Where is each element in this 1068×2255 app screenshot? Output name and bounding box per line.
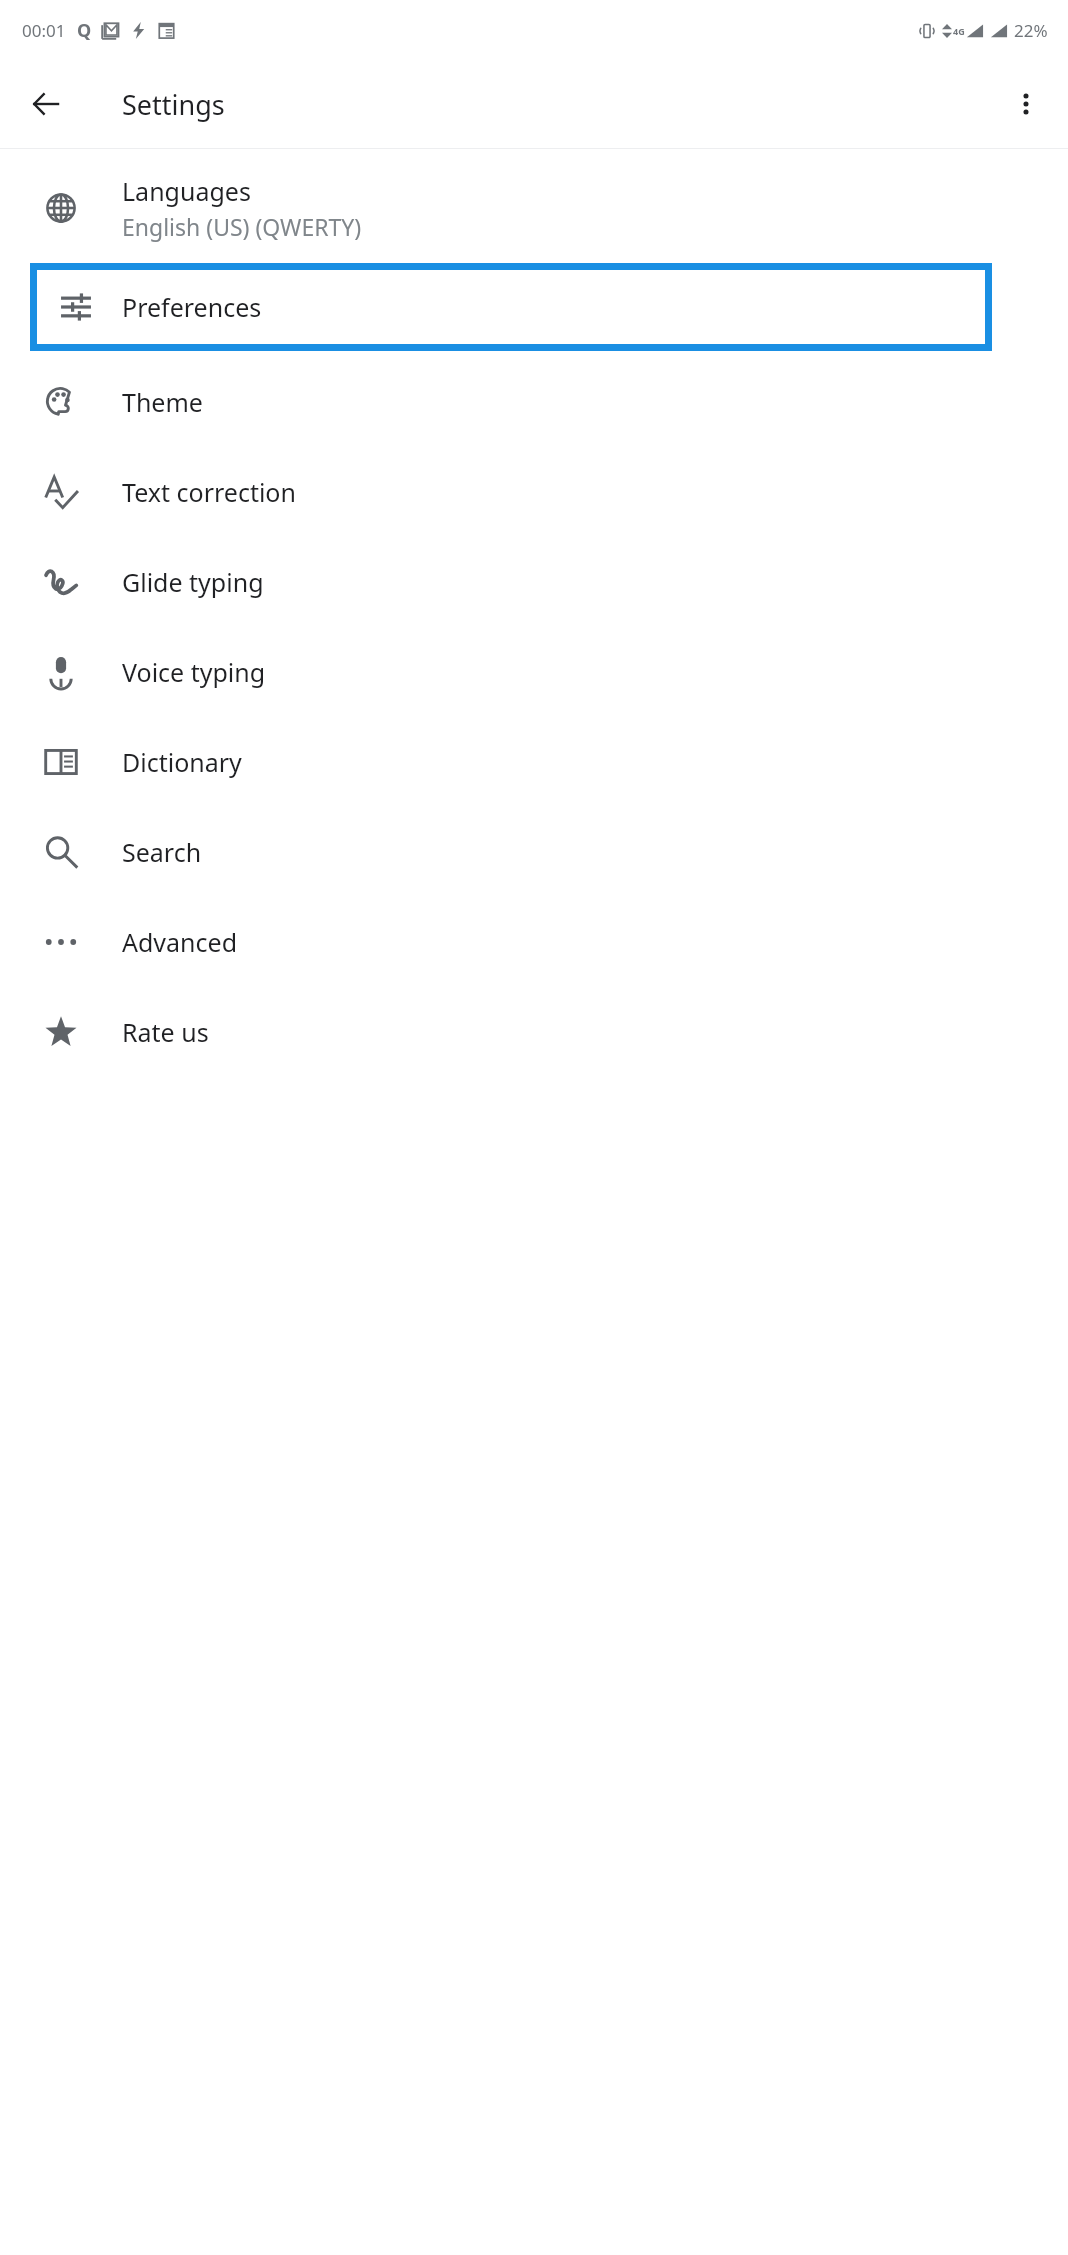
button[interactable]: Theme: [0, 357, 1068, 447]
button[interactable]: Preferences: [30, 263, 992, 351]
button[interactable]: Text correction: [0, 447, 1068, 537]
button[interactable]: Advanced: [0, 897, 1068, 987]
staticText: 22%: [1014, 19, 1048, 42]
staticText: Glide typing: [122, 565, 264, 599]
staticText: 00:01: [22, 19, 66, 42]
staticText: Search: [122, 835, 202, 869]
button[interactable]: More options: [1002, 80, 1050, 128]
button[interactable]: Dictionary: [0, 717, 1068, 807]
button[interactable]: Search: [0, 807, 1068, 897]
button[interactable]: Languages: [0, 159, 1068, 257]
staticText: Rate us: [122, 1015, 209, 1049]
button[interactable]: Back: [22, 80, 70, 128]
staticText: English (US) (QWERTY): [122, 211, 362, 242]
staticText: Preferences: [122, 290, 262, 324]
staticText: Dictionary: [122, 745, 242, 779]
button[interactable]: Voice typing: [0, 627, 1068, 717]
staticText: Voice typing: [122, 655, 266, 689]
staticText: Text correction: [122, 475, 296, 509]
button[interactable]: Rate us: [0, 987, 1068, 1077]
staticText: Settings: [122, 86, 225, 123]
staticText: Q: [77, 18, 92, 43]
button[interactable]: Glide typing: [0, 537, 1068, 627]
staticText: Advanced: [122, 925, 238, 959]
staticText: Languages: [122, 174, 251, 208]
staticText: 4G: [953, 25, 965, 37]
staticText: Theme: [122, 385, 203, 419]
